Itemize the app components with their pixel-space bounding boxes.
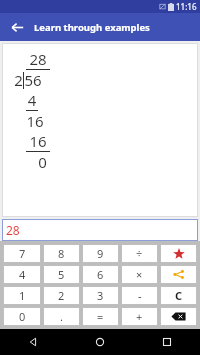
button[interactable]: Backspace bbox=[160, 307, 197, 326]
button[interactable]: 6 bbox=[82, 265, 119, 284]
staticText: 2 bbox=[58, 288, 65, 303]
staticText: = bbox=[97, 309, 104, 324]
staticText: 56 bbox=[24, 70, 42, 90]
staticText: 8 bbox=[58, 246, 65, 261]
button[interactable]: 0 bbox=[3, 307, 41, 326]
button[interactable]: Favourite bbox=[160, 244, 197, 263]
button[interactable]: ÷ bbox=[121, 244, 158, 263]
button[interactable]: 1 bbox=[3, 286, 41, 305]
button[interactable]: . bbox=[43, 307, 80, 326]
button[interactable]: 28 bbox=[2, 219, 198, 241]
staticText: 7 bbox=[19, 246, 26, 261]
staticText: C bbox=[175, 288, 183, 303]
staticText: 4 bbox=[19, 267, 26, 282]
staticText: 16 bbox=[29, 131, 47, 151]
staticText: Learn through examples bbox=[34, 21, 150, 34]
button[interactable]: 4 bbox=[3, 265, 41, 284]
button[interactable]: Back bbox=[0, 329, 66, 355]
button[interactable]: 3 bbox=[82, 286, 119, 305]
staticText: + bbox=[136, 309, 143, 324]
staticText: 0 bbox=[38, 152, 47, 172]
staticText: 4 bbox=[26, 90, 38, 110]
button[interactable]: Back bbox=[0, 13, 34, 41]
button[interactable]: 5 bbox=[43, 265, 80, 284]
staticText: - bbox=[138, 288, 142, 303]
staticText: 3 bbox=[97, 288, 104, 303]
staticText: 11:16 bbox=[176, 1, 197, 12]
button[interactable]: 7 bbox=[3, 244, 41, 263]
button[interactable]: Share bbox=[160, 265, 197, 284]
button[interactable]: + bbox=[121, 307, 158, 326]
staticText: 1 bbox=[19, 288, 26, 303]
staticText: 28 bbox=[29, 49, 47, 69]
button[interactable]: 9 bbox=[82, 244, 119, 263]
staticText: 6 bbox=[97, 267, 104, 282]
button[interactable]: = bbox=[82, 307, 119, 326]
staticText: 5 bbox=[58, 267, 65, 282]
button[interactable]: 8 bbox=[43, 244, 80, 263]
staticText: 2 bbox=[14, 70, 23, 90]
button[interactable]: - bbox=[121, 286, 158, 305]
button[interactable]: Home bbox=[66, 329, 133, 355]
button[interactable]: 2 bbox=[43, 286, 80, 305]
button[interactable]: Recents bbox=[133, 329, 200, 355]
staticText: 28 bbox=[6, 222, 20, 238]
staticText: × bbox=[136, 267, 143, 282]
staticText: 0 bbox=[19, 309, 26, 324]
staticText: . bbox=[60, 309, 63, 324]
button[interactable]: Clear bbox=[160, 286, 197, 305]
staticText: 9 bbox=[97, 246, 104, 261]
button[interactable]: × bbox=[121, 265, 158, 284]
staticText: ÷ bbox=[136, 246, 143, 261]
staticText: 16 bbox=[26, 111, 44, 131]
